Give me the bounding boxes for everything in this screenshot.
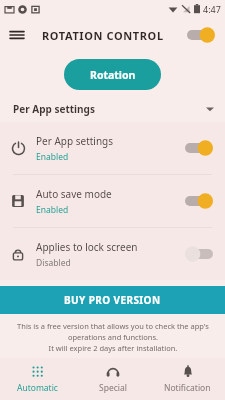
staticText: Enabled xyxy=(36,151,69,163)
staticText: Automatic xyxy=(17,382,58,394)
staticText: 4:47 xyxy=(203,3,221,15)
button[interactable]: Automatic xyxy=(0,358,75,400)
button[interactable]: Per App settings xyxy=(0,122,225,174)
button[interactable]: Per App settings xyxy=(0,96,225,122)
staticText: Per App settings xyxy=(13,102,95,116)
button[interactable]: Special xyxy=(75,358,150,400)
staticText: Disabled xyxy=(36,257,71,269)
staticText: Auto save mode xyxy=(36,187,112,201)
staticText: Enabled xyxy=(36,204,69,216)
staticText: This is a free version that allows you t… xyxy=(17,321,209,353)
staticText: Applies to lock screen xyxy=(36,240,138,254)
staticText: BUY PRO VERSION xyxy=(64,293,161,307)
button[interactable]: Rotation xyxy=(64,59,161,90)
button[interactable]: BUY PRO VERSION xyxy=(0,286,225,314)
staticText: Rotation xyxy=(90,68,136,82)
button[interactable]: Open navigation menu xyxy=(0,18,34,52)
button[interactable]: Toggle rotation control xyxy=(187,27,215,43)
button[interactable]: Applies to lock screen xyxy=(0,228,225,280)
button[interactable]: Notification xyxy=(150,358,225,400)
staticText: ROTATION CONTROL xyxy=(42,28,164,43)
staticText: Special xyxy=(99,382,127,394)
staticText: Per App settings xyxy=(36,134,114,148)
button[interactable]: Auto save mode xyxy=(0,175,225,227)
staticText: Notification xyxy=(164,382,211,394)
